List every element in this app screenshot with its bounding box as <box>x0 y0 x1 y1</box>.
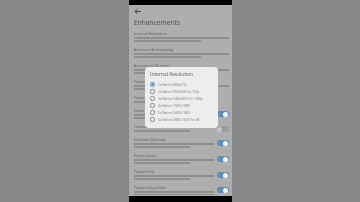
button[interactable]: 5x Native (2400x1360) <box>150 109 214 116</box>
button[interactable]: Back <box>133 7 142 16</box>
button[interactable]: Texture Scaling <box>129 94 232 105</box>
button[interactable]: Texture Fog <box>129 168 232 182</box>
button[interactable]: 2x Native (960x544) for 720p <box>150 88 214 95</box>
staticText: 6x Native (2880x1632) for 4K <box>158 118 200 122</box>
button[interactable]: Enabled <box>216 186 229 194</box>
button[interactable]: Texture Filtering <box>129 78 232 92</box>
button[interactable]: 6x Native (2880x1632) for 4K <box>150 116 214 123</box>
button[interactable]: Internal Resolution <box>129 30 232 44</box>
staticText: Enhancements <box>134 18 180 27</box>
button[interactable]: 1x Native (480x272) <box>150 81 214 88</box>
staticText: 3x Native (1440x816) for 1080p <box>158 97 204 101</box>
staticText: Smart 2D texture filtering <box>134 108 178 113</box>
button[interactable]: Enabled <box>216 171 229 179</box>
staticText: 4x Native (1920x1088) <box>158 104 190 108</box>
staticText: Hardware Transform <box>134 124 170 129</box>
button[interactable]: 4x Native (1920x1088) <box>150 102 214 109</box>
staticText: Advanced Anti-aliasing <box>134 47 174 52</box>
button[interactable]: 3x Native (1440x816) for 1080p <box>150 95 214 102</box>
staticText: 2x Native (960x544) for 720p <box>158 90 200 94</box>
button[interactable]: Software Skinning <box>129 136 232 150</box>
button[interactable]: Enabled <box>216 110 229 118</box>
button[interactable]: Smart 2D texture filtering <box>129 107 232 121</box>
staticText: Anisotropic Filtering <box>134 63 169 68</box>
staticText: Vertex Cache <box>134 153 157 158</box>
staticText: Texture Copy Filter <box>134 185 167 190</box>
button[interactable]: Texture Copy Filter <box>129 184 232 196</box>
button[interactable]: Vertex Cache <box>129 152 232 166</box>
staticText: 5x Native (2400x1360) <box>158 111 190 115</box>
staticText: Texture Scaling <box>134 95 161 100</box>
staticText: Internal Resolution <box>134 31 167 36</box>
staticText: Texture Filtering <box>134 79 163 84</box>
button[interactable]: Advanced Anti-aliasing <box>129 46 232 60</box>
button[interactable]: Disabled <box>216 125 229 133</box>
staticText: 1x Native (480x272) <box>158 83 187 87</box>
button[interactable]: Anisotropic Filtering <box>129 62 232 76</box>
staticText: Software Skinning <box>134 137 166 142</box>
button[interactable]: Enabled <box>216 139 229 147</box>
staticText: Internal Resolution <box>150 71 194 78</box>
button[interactable]: Enabled <box>216 155 229 163</box>
staticText: Texture Fog <box>134 169 155 174</box>
button[interactable]: Hardware Transform <box>129 123 232 134</box>
